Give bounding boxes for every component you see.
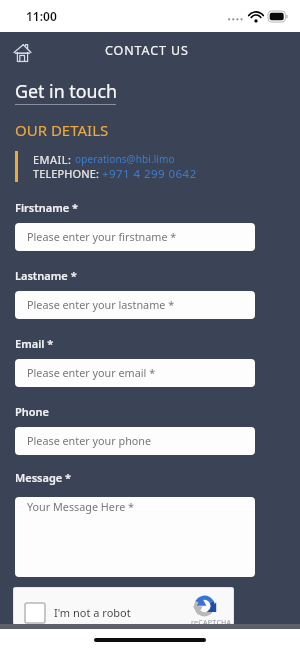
button[interactable]: Your Message Here *	[15, 497, 255, 577]
staticText: Firstname *	[15, 200, 79, 215]
staticText: Lastname *	[15, 268, 77, 283]
staticText: Please enter your firstname *	[27, 229, 177, 244]
staticText: OUR DETAILS	[15, 120, 109, 140]
button[interactable]: operations@hbi.limo	[75, 152, 175, 166]
staticText: Phone	[15, 404, 50, 419]
staticText: Please enter your phone	[27, 433, 152, 448]
staticText: reCAPTCHA	[191, 618, 232, 625]
staticText: 11:00	[26, 8, 57, 24]
button[interactable]: Home	[8, 39, 36, 67]
staticText: Get in touch	[15, 79, 117, 103]
button[interactable]: Please enter your phone	[15, 427, 255, 455]
staticText: Email *	[15, 336, 54, 351]
staticText: Please enter your email *	[27, 365, 156, 380]
staticText: I'm not a robot	[54, 605, 131, 620]
staticText: CONTACT US	[105, 42, 189, 59]
staticText: EMAIL:	[33, 152, 75, 167]
staticText: TELEPHONE:	[33, 166, 102, 181]
staticText: Please enter your lastname *	[27, 297, 175, 312]
staticText: Your Message Here *	[27, 499, 135, 514]
button[interactable]: I'm not a robot	[13, 587, 234, 625]
button[interactable]: +971 4 299 0642	[102, 166, 197, 182]
button[interactable]: Please enter your lastname *	[15, 291, 255, 319]
button[interactable]: Please enter your firstname *	[15, 223, 255, 251]
staticText: Message *	[15, 470, 72, 485]
button[interactable]: Please enter your email *	[15, 359, 255, 387]
